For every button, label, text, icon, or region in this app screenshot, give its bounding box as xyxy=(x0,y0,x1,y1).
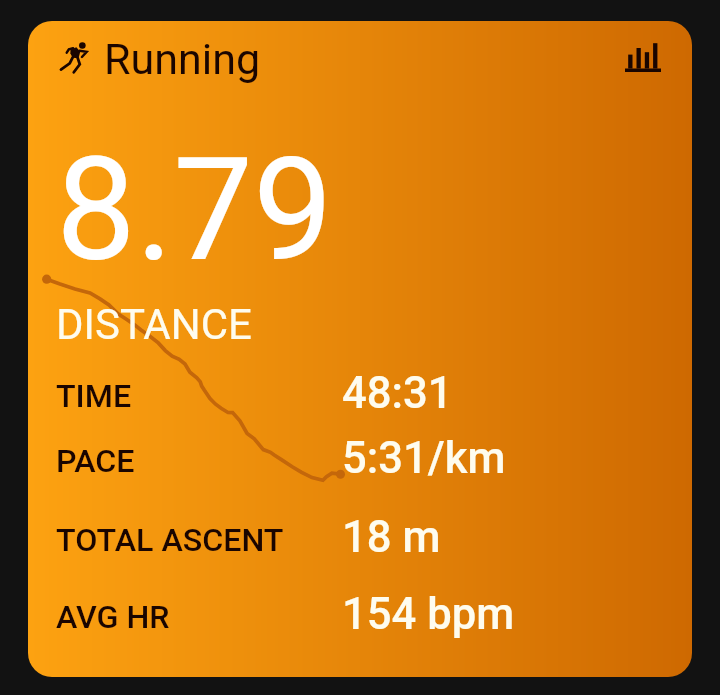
staticText: 154 bpm xyxy=(342,589,515,640)
staticText: DISTANCE xyxy=(56,300,252,349)
staticText: TOTAL ASCENT xyxy=(56,521,284,559)
staticText: 8.79 xyxy=(56,127,333,293)
staticText: 5:31/km xyxy=(342,433,506,484)
staticText: TIME xyxy=(56,377,132,415)
button[interactable]: PACE xyxy=(28,421,692,481)
staticText: AVG HR xyxy=(56,598,170,636)
staticText: PACE xyxy=(56,442,135,480)
staticText: 18 m xyxy=(342,512,441,563)
button[interactable]: Running xyxy=(59,29,261,85)
button[interactable]: Statistics xyxy=(611,29,675,85)
button[interactable]: Running xyxy=(28,21,692,677)
button[interactable]: TOTAL ASCENT xyxy=(28,500,692,560)
button[interactable]: TIME xyxy=(28,356,692,416)
button[interactable]: AVG HR xyxy=(28,577,692,637)
staticText: Running xyxy=(104,34,261,84)
staticText: 48:31 xyxy=(342,368,453,419)
